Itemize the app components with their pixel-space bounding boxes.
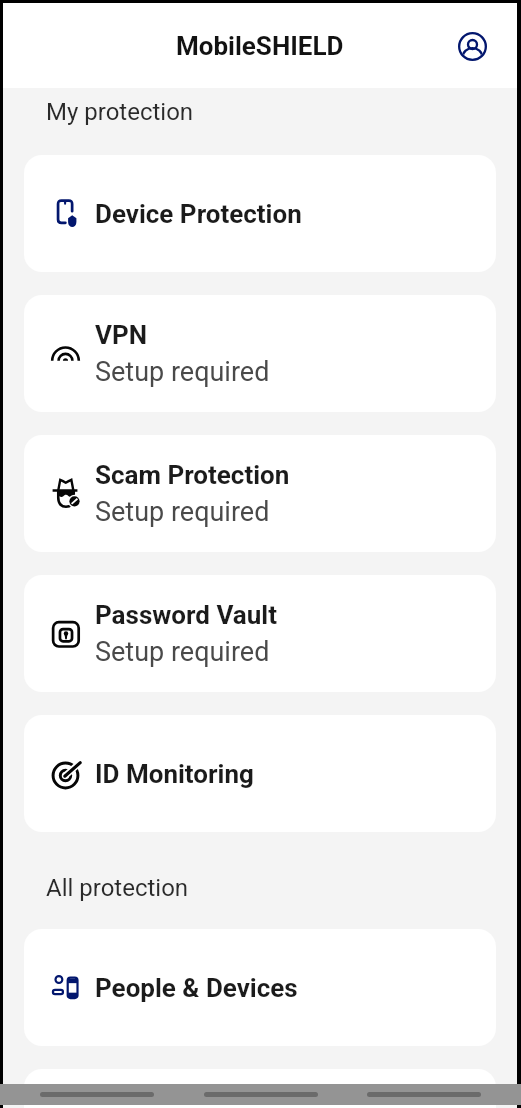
button[interactable]: VPN bbox=[24, 295, 496, 412]
staticText: Setup required bbox=[95, 496, 270, 528]
button[interactable]: Identity bbox=[24, 1069, 496, 1108]
staticText: Scam Protection bbox=[95, 460, 290, 490]
button[interactable]: Device Protection bbox=[24, 155, 496, 272]
staticText: MobileSHIELD bbox=[176, 31, 344, 61]
staticText: Setup required bbox=[95, 356, 270, 388]
button[interactable]: ID Monitoring bbox=[24, 715, 496, 832]
staticText: ID Monitoring bbox=[95, 759, 254, 789]
button[interactable]: Scam Protection bbox=[24, 435, 496, 552]
staticText: Password Vault bbox=[95, 600, 277, 630]
staticText: All protection bbox=[46, 874, 189, 902]
button[interactable]: Password Vault bbox=[24, 575, 496, 692]
staticText: Device Protection bbox=[95, 199, 302, 229]
staticText: People & Devices bbox=[95, 973, 298, 1003]
button[interactable]: People & Devices bbox=[24, 929, 496, 1046]
staticText: Setup required bbox=[95, 636, 270, 668]
staticText: My protection bbox=[46, 98, 194, 126]
staticText: VPN bbox=[95, 320, 148, 350]
button[interactable]: Account bbox=[450, 24, 494, 68]
